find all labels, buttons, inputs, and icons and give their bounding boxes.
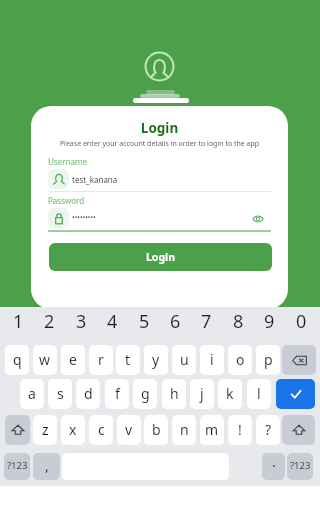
staticText: ? bbox=[265, 420, 272, 439]
button[interactable]: q bbox=[5, 345, 29, 375]
staticText: Please enter your account details in ord… bbox=[31, 139, 288, 149]
button[interactable]: u bbox=[172, 345, 196, 375]
staticText: test_kanana bbox=[72, 174, 118, 185]
staticText: 6 bbox=[170, 309, 181, 334]
staticText: Username bbox=[48, 156, 87, 167]
staticText: 3 bbox=[76, 309, 87, 334]
staticText: f bbox=[115, 384, 120, 403]
staticText: v bbox=[125, 420, 133, 439]
button[interactable]: g bbox=[133, 379, 157, 409]
staticText: m bbox=[205, 420, 219, 439]
button[interactable]: 1 bbox=[5, 307, 31, 336]
button[interactable]: v bbox=[117, 415, 141, 445]
button[interactable]: Login bbox=[49, 243, 272, 271]
staticText: j bbox=[200, 384, 204, 403]
button[interactable]: c bbox=[89, 415, 113, 445]
staticText: 8 bbox=[233, 309, 244, 334]
staticText: , bbox=[45, 456, 49, 475]
staticText: 4 bbox=[107, 309, 118, 334]
button[interactable]: m bbox=[200, 415, 224, 445]
button[interactable]: y bbox=[144, 345, 168, 375]
button[interactable]: s bbox=[48, 379, 72, 409]
button[interactable]: 9 bbox=[256, 307, 282, 336]
button[interactable]: , bbox=[33, 453, 60, 480]
staticText: l bbox=[257, 384, 261, 403]
button[interactable]: ?123 bbox=[4, 453, 30, 480]
button[interactable]: k bbox=[218, 379, 242, 409]
staticText: p bbox=[264, 350, 273, 369]
staticText: 5 bbox=[139, 309, 150, 334]
button[interactable]: w bbox=[33, 345, 57, 375]
button[interactable]: f bbox=[105, 379, 129, 409]
button[interactable]: 5 bbox=[131, 307, 157, 336]
button[interactable]: l bbox=[247, 379, 271, 409]
button[interactable]: e bbox=[61, 345, 85, 375]
staticText: 0 bbox=[296, 309, 307, 334]
staticText: h bbox=[170, 384, 179, 403]
button[interactable]: t bbox=[116, 345, 140, 375]
staticText: g bbox=[141, 384, 150, 403]
button[interactable]: j bbox=[190, 379, 214, 409]
button[interactable]: a bbox=[20, 379, 44, 409]
staticText: 1 bbox=[13, 309, 24, 334]
button[interactable]: ! bbox=[228, 415, 252, 445]
staticText: s bbox=[57, 384, 64, 403]
staticText: x bbox=[69, 420, 77, 439]
button[interactable]: 0 bbox=[288, 307, 314, 336]
staticText: y bbox=[152, 350, 160, 369]
button[interactable]: Shift bbox=[282, 415, 315, 445]
staticText: Login bbox=[146, 250, 176, 264]
staticText: w bbox=[39, 350, 51, 369]
button[interactable]: 8 bbox=[225, 307, 251, 336]
button[interactable]: 3 bbox=[68, 307, 94, 336]
staticText: 2 bbox=[44, 309, 55, 334]
button[interactable]: o bbox=[228, 345, 252, 375]
staticText: ••••••••• bbox=[72, 213, 96, 223]
staticText: t bbox=[125, 350, 131, 369]
button[interactable]: 4 bbox=[99, 307, 125, 336]
button[interactable]: Enter bbox=[276, 379, 315, 409]
button[interactable]: x bbox=[61, 415, 85, 445]
staticText: ?123 bbox=[290, 459, 311, 472]
button[interactable]: i bbox=[200, 345, 224, 375]
button[interactable]: n bbox=[172, 415, 196, 445]
staticText: ! bbox=[238, 420, 242, 439]
staticText: Password bbox=[48, 195, 85, 206]
staticText: u bbox=[180, 350, 189, 369]
staticText: b bbox=[152, 420, 161, 439]
staticText: ?123 bbox=[7, 459, 28, 472]
button[interactable]: Shift bbox=[5, 415, 30, 445]
button[interactable]: ?123 bbox=[287, 453, 313, 480]
button[interactable]: 6 bbox=[162, 307, 188, 336]
staticText: i bbox=[210, 350, 214, 369]
button[interactable]: z bbox=[33, 415, 57, 445]
button[interactable]: h bbox=[162, 379, 186, 409]
staticText: · bbox=[272, 456, 276, 475]
staticText: n bbox=[180, 420, 189, 439]
staticText: 7 bbox=[201, 309, 212, 334]
staticText: q bbox=[13, 350, 22, 369]
staticText: d bbox=[84, 384, 93, 403]
button[interactable]: b bbox=[144, 415, 168, 445]
button[interactable]: d bbox=[76, 379, 100, 409]
staticText: r bbox=[98, 350, 104, 369]
button[interactable]: p bbox=[256, 345, 280, 375]
staticText: z bbox=[42, 420, 49, 439]
staticText: c bbox=[98, 420, 105, 439]
button[interactable]: · bbox=[262, 453, 285, 480]
staticText: k bbox=[226, 384, 234, 403]
button[interactable]: 2 bbox=[36, 307, 62, 336]
button[interactable]: ? bbox=[256, 415, 280, 445]
staticText: 9 bbox=[264, 309, 275, 334]
button[interactable]: Show password bbox=[250, 211, 266, 227]
staticText: o bbox=[236, 350, 245, 369]
button[interactable]: Backspace bbox=[282, 345, 316, 375]
staticText: a bbox=[28, 384, 36, 403]
staticText: Login bbox=[31, 119, 288, 137]
staticText: e bbox=[69, 350, 77, 369]
button[interactable]: 7 bbox=[193, 307, 219, 336]
button[interactable]: r bbox=[89, 345, 113, 375]
